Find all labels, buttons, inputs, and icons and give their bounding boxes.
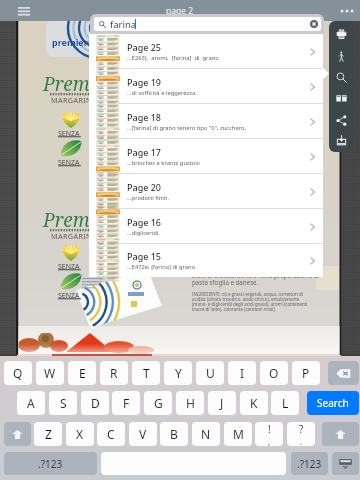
staticText: D (91, 395, 100, 411)
button[interactable]: N (192, 422, 220, 446)
staticText: R (110, 365, 118, 381)
staticText: I (240, 365, 245, 381)
staticText: V (139, 426, 147, 442)
staticText: farina (110, 18, 137, 31)
button[interactable]: Print (329, 23, 354, 45)
staticText: ...digliceridi. (127, 229, 160, 237)
staticText: L (282, 395, 289, 411)
button[interactable]: ! (255, 422, 283, 446)
button[interactable]: J (208, 391, 236, 415)
staticText: M (233, 426, 244, 442)
staticText: premierEV (52, 36, 99, 48)
button[interactable]: V (129, 422, 157, 446)
button[interactable]: B (160, 422, 188, 446)
button[interactable]: Page 20 (89, 174, 323, 209)
button[interactable]: O (260, 361, 288, 385)
staticText: Q (13, 365, 23, 381)
staticText: Page 18 (127, 111, 162, 123)
button[interactable]: P (292, 361, 320, 385)
button[interactable]: farina (94, 17, 321, 31)
button[interactable]: Q (4, 361, 32, 385)
button[interactable]: Menu (14, 1, 34, 21)
button[interactable]: ? (287, 422, 315, 446)
button[interactable]: Page 16 (89, 209, 323, 244)
staticText: S (60, 395, 67, 411)
staticText: page 2 (166, 5, 194, 17)
staticText: .?123 (38, 457, 63, 471)
button[interactable]: E (68, 361, 96, 385)
staticText: ! (268, 422, 271, 436)
button[interactable]: I (228, 361, 256, 385)
staticText: ...E263), aromi, [farina] di grano (127, 54, 219, 62)
staticText: , (268, 436, 271, 446)
button[interactable]: Clear search (310, 20, 318, 28)
button[interactable]: Z (34, 422, 62, 446)
button[interactable]: Page 17 (89, 139, 323, 174)
button[interactable]: Backspace (328, 361, 359, 385)
staticText: Page 25 (127, 41, 162, 53)
button[interactable]: Page 19 (89, 69, 323, 104)
button[interactable]: R (100, 361, 128, 385)
button[interactable]: G (144, 391, 172, 415)
button[interactable]: Read aloud (329, 45, 354, 67)
staticText: T (143, 365, 150, 381)
staticText: .?123 (297, 457, 322, 471)
button[interactable]: Page 18 (89, 104, 323, 139)
button[interactable]: Shift (4, 422, 31, 446)
button[interactable]: K (240, 391, 268, 415)
staticText: MARGARINA PER (51, 95, 114, 105)
button[interactable]: Search (329, 66, 354, 88)
staticText: Page 19 (127, 76, 162, 88)
button[interactable]: More options (338, 2, 356, 20)
staticText: A (27, 395, 35, 411)
button[interactable]: M (224, 422, 252, 446)
button[interactable]: .?123 (291, 452, 328, 475)
button[interactable]: C (97, 422, 125, 446)
button[interactable]: L (271, 391, 299, 415)
button[interactable]: Y (164, 361, 192, 385)
button[interactable]: Page view (329, 87, 354, 109)
staticText: ...di sofficità e leggerezza. (127, 89, 197, 97)
staticText: F (123, 395, 130, 411)
staticText: Page 15 (127, 250, 162, 262)
button[interactable]: Hide keyboard (332, 452, 359, 475)
staticText: Page 20 (127, 181, 162, 193)
staticText: Page 16 (127, 216, 162, 228)
button[interactable]: Search (307, 391, 359, 415)
staticText: X (76, 426, 84, 442)
staticText: B (170, 426, 178, 442)
staticText: Z (45, 426, 52, 442)
button[interactable]: A (17, 391, 45, 415)
staticText: SENZA (58, 262, 80, 272)
button[interactable]: H (176, 391, 204, 415)
button[interactable]: .?123 (4, 452, 97, 475)
staticText: E (79, 365, 86, 381)
staticText: C (107, 426, 115, 442)
button[interactable]: Download (329, 129, 354, 151)
button[interactable]: F (112, 391, 140, 415)
staticText: SENZA (58, 291, 80, 301)
staticText: ...E472e; [farina] di grano (127, 263, 196, 271)
staticText: J (220, 395, 224, 411)
button[interactable]: T (132, 361, 160, 385)
button[interactable]: W (36, 361, 64, 385)
button[interactable]: Page 25 (89, 34, 323, 69)
staticText: K (250, 395, 258, 411)
button[interactable]: U (196, 361, 224, 385)
button[interactable]: X (66, 422, 94, 446)
staticText: U (206, 365, 215, 381)
staticText: Premier (43, 207, 114, 233)
button[interactable]: S (49, 391, 77, 415)
staticText: MARGARINA PER (51, 231, 114, 241)
button[interactable]: D (81, 391, 109, 415)
staticText: P (302, 365, 310, 381)
staticText: Search (317, 396, 349, 410)
button[interactable]: Shift (322, 422, 359, 446)
button[interactable]: Share (329, 109, 354, 131)
staticText: O (269, 365, 279, 381)
staticText: Page 17 (127, 146, 162, 158)
button[interactable]: Page 15 (89, 244, 323, 277)
staticText: W (44, 365, 56, 381)
staticText: Premier (43, 71, 114, 97)
